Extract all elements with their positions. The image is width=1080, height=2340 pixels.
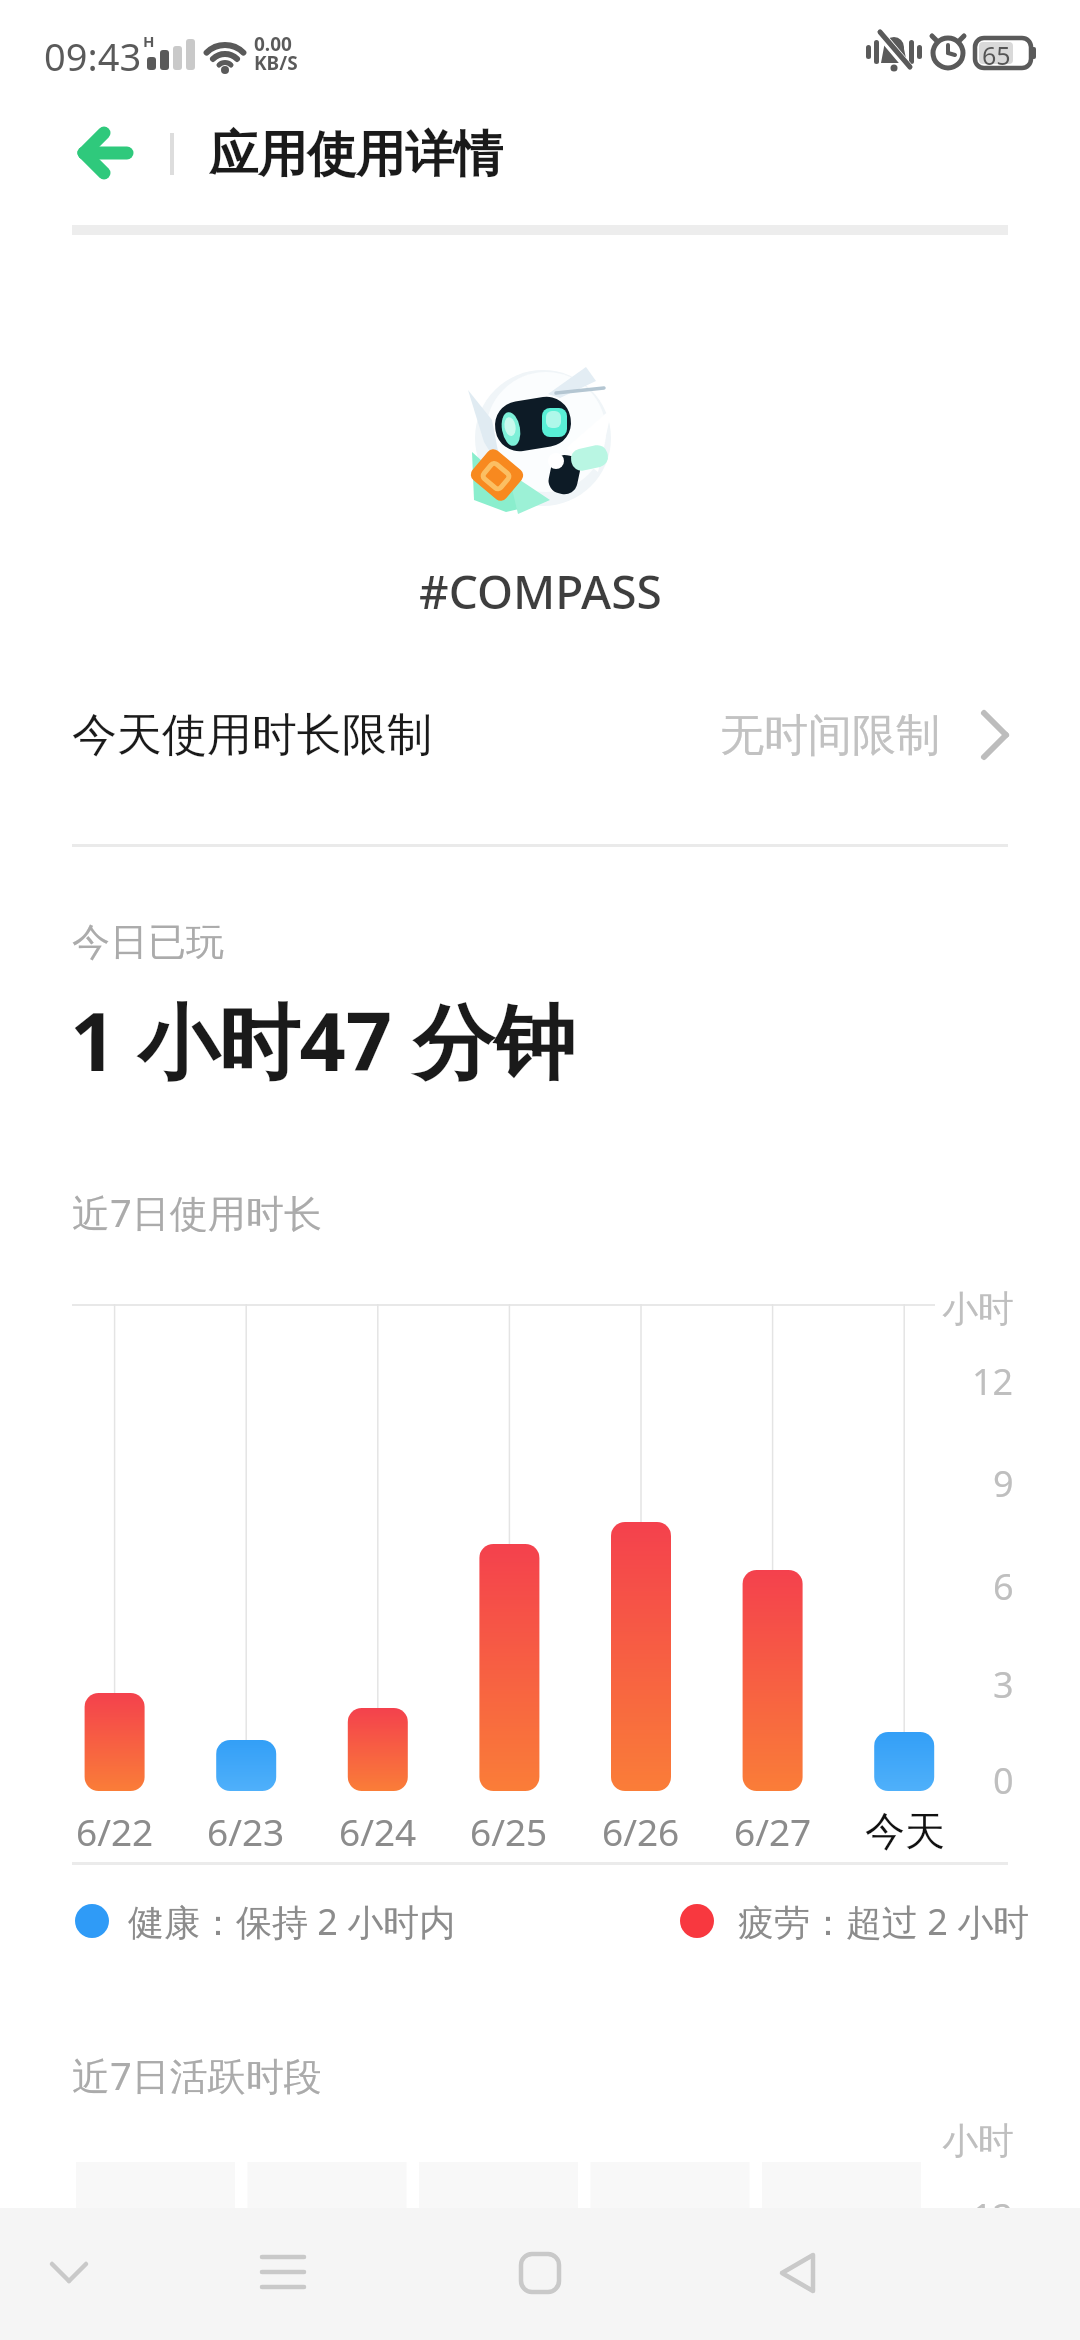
staticText: 6/27: [734, 1806, 812, 1854]
staticText: 09:43: [44, 30, 142, 74]
staticText: 健康：保持 2 小时内: [128, 1897, 456, 1945]
staticText: 12: [972, 1357, 1014, 1401]
staticText: 6/22: [76, 1806, 154, 1854]
button[interactable]: [505, 2230, 575, 2320]
staticText: 9: [993, 1459, 1014, 1503]
staticText: #COMPASS: [419, 560, 662, 620]
staticText: 65: [982, 38, 1011, 70]
staticText: 小时: [942, 1286, 1014, 1330]
staticText: 无时间限制: [720, 708, 940, 763]
staticText: H: [143, 31, 155, 51]
staticText: 小时: [942, 2118, 1014, 2162]
staticText: 6/25: [470, 1806, 548, 1854]
staticText: 6: [993, 1562, 1014, 1606]
staticText: 0: [993, 1756, 1014, 1800]
staticText: 3: [993, 1660, 1014, 1704]
staticText: 6/26: [602, 1806, 680, 1854]
button[interactable]: [40, 2230, 110, 2320]
staticText: KB/S: [254, 50, 298, 72]
staticText: 6/24: [339, 1806, 417, 1854]
staticText: 疲劳：超过 2 小时: [738, 1897, 1030, 1945]
staticText: 今天: [865, 1806, 945, 1854]
staticText: 近7日活跃时段: [72, 2049, 322, 2095]
staticText: 今日已玩: [72, 918, 224, 964]
staticText: 0.00: [254, 31, 292, 53]
staticText: 应用使用详情: [209, 124, 503, 182]
staticText: 今天使用时长限制: [72, 707, 432, 764]
button[interactable]: [60, 120, 150, 190]
button[interactable]: [765, 2230, 835, 2320]
button[interactable]: 今天使用时长限制: [72, 705, 672, 765]
staticText: 近7日使用时长: [72, 1186, 322, 1232]
staticText: 6/23: [207, 1806, 285, 1854]
staticText: 1 小时47 分钟: [70, 984, 576, 1084]
staticText: 12: [972, 2192, 1014, 2236]
button[interactable]: [250, 2230, 320, 2320]
